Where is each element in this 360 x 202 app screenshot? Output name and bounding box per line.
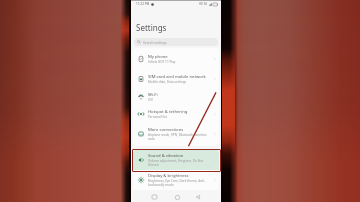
staticText: 11:22 PM	[136, 2, 150, 6]
staticText: Wi-Fi	[148, 92, 158, 98]
button[interactable]: More connections	[133, 122, 219, 146]
staticText: Hotspot & tethering	[148, 109, 188, 115]
staticText: HD 5G	[199, 2, 208, 6]
staticText: Sound & vibration	[148, 153, 184, 159]
button[interactable]: Sound & vibration	[133, 150, 219, 170]
button[interactable]: My phone	[133, 48, 219, 69]
staticText: My phone	[148, 54, 168, 60]
staticText: More connections	[148, 127, 184, 133]
staticText: SIM card and mobile network	[148, 74, 206, 80]
staticText: Volume adjustment, Ringtone, Do Not Dist…	[148, 159, 204, 167]
staticText: Display & brightness	[148, 173, 189, 179]
staticText: Settings	[136, 22, 167, 33]
button[interactable]: Recents	[149, 192, 159, 202]
button[interactable]: SIM card and mobile network	[133, 69, 219, 88]
staticText: Off	[148, 98, 153, 102]
staticText: Airplane mode, VPN, Bluetooth, wireless …	[148, 133, 207, 141]
button[interactable]: Display & brightness	[133, 170, 219, 190]
staticText: Personal Hot	[148, 115, 167, 119]
button[interactable]: Search settings	[134, 38, 218, 46]
button[interactable]: Back	[193, 192, 203, 202]
button[interactable]: Wi-Fi	[133, 88, 219, 105]
staticText: Mobile data, Data settings	[148, 80, 187, 84]
staticText: Search settings	[143, 40, 167, 44]
staticText: Infinix HOT 11 Play	[148, 60, 176, 64]
button[interactable]: Home	[172, 192, 182, 202]
staticText: Brightness, Eye Care, Dark theme, Anti- …	[148, 179, 205, 187]
button[interactable]: Hotspot & tethering	[133, 105, 219, 122]
